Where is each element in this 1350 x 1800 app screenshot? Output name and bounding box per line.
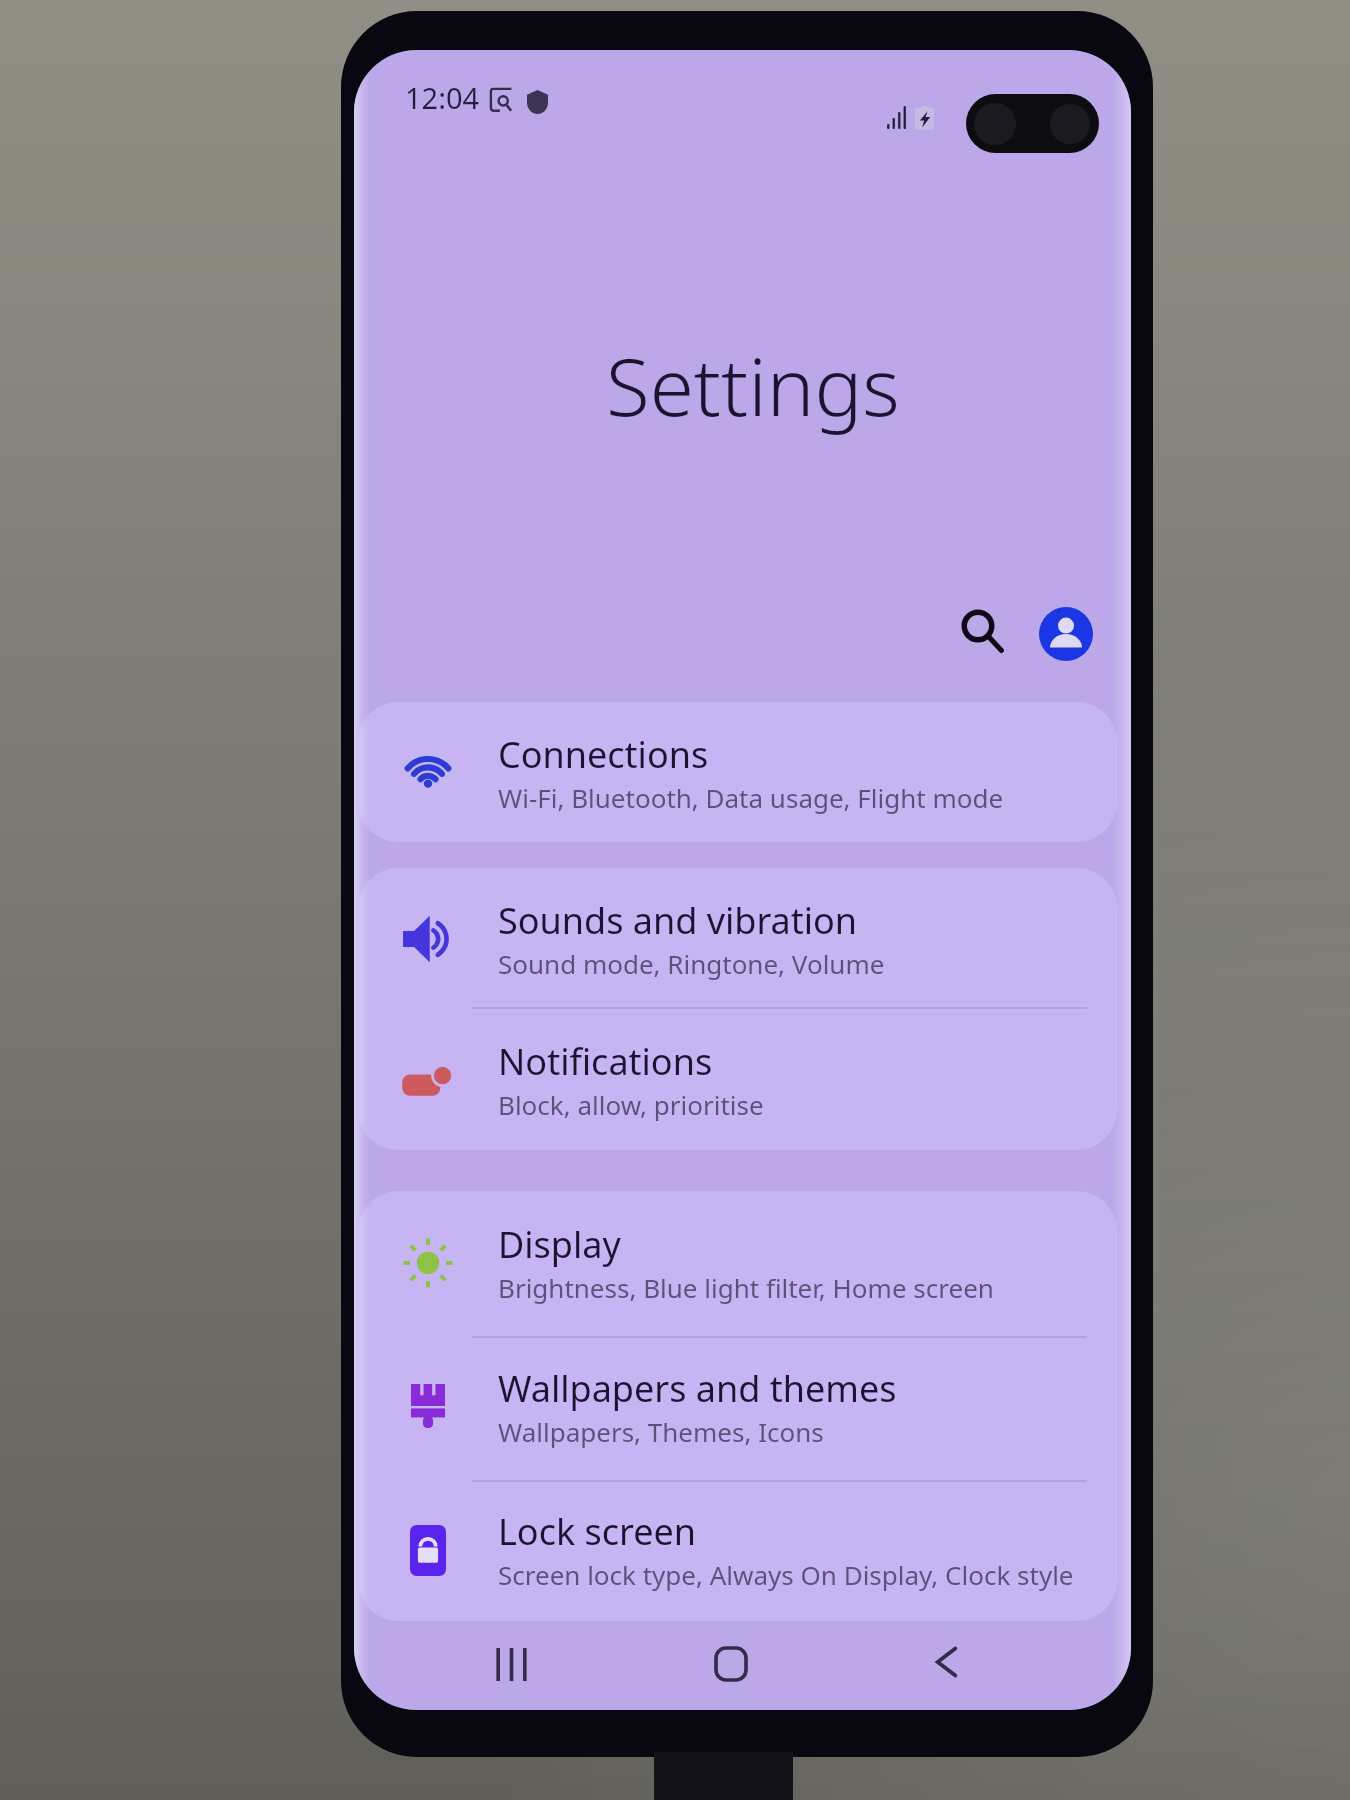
button[interactable]: Wallpapers and themes <box>358 1334 1117 1478</box>
staticText: Screen lock type, Always On Display, Clo… <box>498 1557 1074 1592</box>
button[interactable]: Account <box>1039 607 1093 661</box>
staticText: 12:04 <box>405 78 480 117</box>
button[interactable]: Back <box>900 1622 992 1702</box>
button[interactable]: Notifications <box>358 1009 1117 1150</box>
button[interactable]: Home <box>685 1624 777 1704</box>
button[interactable]: Search <box>949 597 1017 665</box>
staticText: Block, allow, prioritise <box>498 1087 764 1122</box>
button[interactable]: Recents <box>465 1624 557 1704</box>
staticText: Sounds and vibration <box>498 896 858 945</box>
staticText: Wallpapers, Themes, Icons <box>498 1414 824 1449</box>
staticText: Settings <box>606 330 900 439</box>
staticText: Notifications <box>498 1037 713 1086</box>
staticText: Wi-Fi, Bluetooth, Data usage, Flight mod… <box>498 780 1004 815</box>
button[interactable]: Lock screen <box>358 1478 1117 1621</box>
staticText: Lock screen <box>498 1507 697 1556</box>
staticText: Wallpapers and themes <box>498 1364 897 1413</box>
button[interactable]: Display <box>358 1191 1117 1334</box>
button[interactable]: Sounds and vibration <box>358 868 1117 1009</box>
staticText: Connections <box>498 730 709 779</box>
staticText: Sound mode, Ringtone, Volume <box>498 946 885 981</box>
staticText: Brightness, Blue light filter, Home scre… <box>498 1270 994 1305</box>
button[interactable]: Connections <box>358 702 1117 842</box>
staticText: Display <box>498 1220 621 1269</box>
